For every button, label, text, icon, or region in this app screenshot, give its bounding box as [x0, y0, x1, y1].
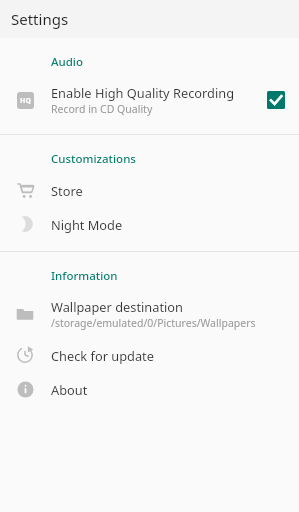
button[interactable]: Enable High Quality Recording toggle [265, 89, 287, 111]
staticText: Information [51, 268, 118, 284]
button[interactable]: About [0, 372, 299, 406]
button[interactable]: HQ [0, 76, 299, 124]
staticText: Customizations [51, 151, 136, 167]
button[interactable]: Check for update [0, 338, 299, 372]
staticText: About [51, 381, 88, 398]
staticText: HQ [20, 96, 31, 106]
staticText: Store [51, 182, 83, 199]
staticText: Wallpaper destination [51, 298, 183, 315]
staticText: /storage/emulated/0/Pictures/Wallpapers [51, 316, 256, 330]
staticText: Check for update [51, 347, 154, 364]
staticText: Enable High Quality Recording [51, 84, 235, 101]
staticText: Record in CD Quality [51, 102, 153, 116]
staticText: Settings [11, 9, 69, 29]
staticText: Night Mode [51, 216, 123, 233]
staticText: Audio [51, 54, 84, 70]
button[interactable]: Wallpaper destination [0, 290, 299, 338]
button[interactable]: Store [0, 173, 299, 207]
button[interactable]: Night Mode [0, 207, 299, 241]
